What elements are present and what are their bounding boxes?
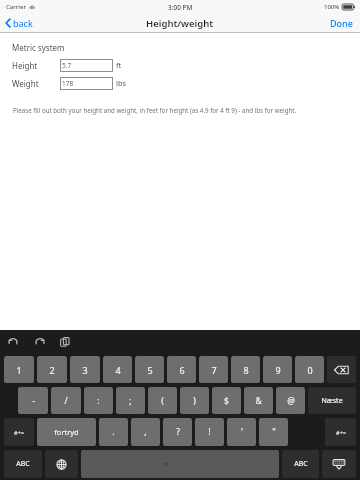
staticText: 0	[307, 364, 313, 376]
button[interactable]: 178	[60, 77, 113, 90]
button[interactable]: 4	[103, 356, 132, 383]
button[interactable]: @	[276, 387, 305, 414]
staticText: Næste	[321, 396, 343, 406]
staticText: @	[287, 395, 295, 407]
staticText: $	[224, 395, 229, 407]
button[interactable]: Hide keyboard	[322, 450, 356, 478]
staticText: Carrier	[6, 3, 26, 11]
staticText: Please fill out both your height and wei…	[13, 106, 297, 114]
staticText: 5.7	[62, 61, 72, 70]
staticText: )	[193, 395, 196, 407]
staticText: &	[255, 395, 262, 407]
staticText: #+=	[14, 429, 24, 436]
staticText: lbs	[116, 78, 127, 88]
button[interactable]: )	[180, 387, 209, 414]
staticText: 5	[147, 364, 153, 376]
button[interactable]: 6	[167, 356, 196, 383]
button[interactable]: (	[148, 387, 177, 414]
staticText: #+=	[336, 429, 346, 436]
staticText: 3	[82, 364, 88, 376]
button[interactable]: #+=	[325, 418, 356, 446]
staticText: !	[208, 426, 211, 438]
staticText: 7	[211, 364, 217, 376]
staticText: '	[241, 426, 243, 438]
button[interactable]: 5	[135, 356, 164, 383]
staticText: 4	[115, 364, 121, 376]
staticText: :	[97, 395, 100, 407]
button[interactable]: back	[0, 15, 41, 31]
staticText: 100%	[324, 3, 340, 11]
button[interactable]: Undo	[4, 333, 22, 351]
button[interactable]: $	[212, 387, 241, 414]
staticText: 8	[243, 364, 249, 376]
staticText: Height/weight	[146, 17, 214, 30]
button[interactable]: ;	[116, 387, 145, 414]
button[interactable]: /	[51, 387, 81, 414]
staticText: 6	[179, 364, 185, 376]
staticText: /	[64, 395, 68, 407]
button[interactable]: #+=	[4, 418, 34, 446]
staticText: 2	[49, 364, 55, 376]
button[interactable]: Done	[323, 15, 360, 31]
button[interactable]: ABC	[4, 450, 42, 478]
staticText: 178	[62, 79, 74, 88]
button[interactable]: Backspace	[327, 356, 356, 383]
button[interactable]: .	[99, 418, 128, 446]
button[interactable]: -	[18, 387, 48, 414]
button[interactable]: :	[84, 387, 113, 414]
staticText: back	[13, 17, 33, 29]
button[interactable]: Næste	[308, 387, 356, 414]
button[interactable]: 8	[231, 356, 260, 383]
button[interactable]: 1	[4, 356, 34, 383]
staticText: 1	[16, 364, 22, 376]
staticText: 9	[275, 364, 281, 376]
staticText: ;	[129, 395, 132, 407]
button[interactable]: ABC	[282, 450, 319, 478]
staticText: .	[112, 426, 115, 438]
button[interactable]: 2	[37, 356, 67, 383]
staticText: Metric system	[12, 42, 65, 53]
staticText: ABC	[294, 459, 308, 469]
button[interactable]: 5.7	[60, 59, 113, 72]
button[interactable]: 9	[263, 356, 292, 383]
button[interactable]: &	[244, 387, 273, 414]
button[interactable]: 3	[70, 356, 100, 383]
button[interactable]: Change keyboard	[45, 450, 78, 478]
staticText: 3:00 PM	[168, 3, 193, 12]
button[interactable]: fortryd	[37, 418, 96, 446]
staticText: fortryd	[54, 427, 79, 437]
button[interactable]: '	[227, 418, 256, 446]
staticText: Weight	[12, 78, 39, 89]
staticText: ?	[176, 426, 180, 438]
staticText: ,	[144, 426, 147, 438]
button[interactable]: !	[195, 418, 224, 446]
staticText: ABC	[16, 459, 30, 469]
button[interactable]: ?	[163, 418, 192, 446]
staticText: (	[161, 395, 164, 407]
button[interactable]: 7	[199, 356, 228, 383]
button[interactable]: ,	[131, 418, 160, 446]
staticText: "	[272, 426, 276, 438]
button[interactable]: Redo	[30, 333, 48, 351]
staticText: -	[32, 395, 35, 407]
button[interactable]: 0	[295, 356, 324, 383]
staticText: Done	[330, 17, 353, 29]
staticText: Height	[12, 60, 38, 71]
button[interactable]: "	[259, 418, 288, 446]
staticText: ft	[116, 60, 122, 70]
button[interactable]: Copy	[56, 333, 74, 351]
